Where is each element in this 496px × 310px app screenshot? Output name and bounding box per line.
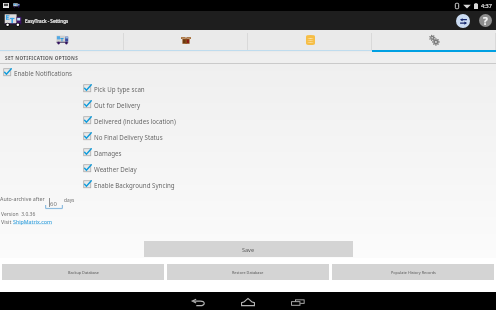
button[interactable]: Pick Up type scan — [83, 84, 145, 93]
button[interactable]: Help — [479, 14, 492, 27]
staticText: EasyTrack - Settings — [25, 18, 69, 24]
staticText: Weather Delay — [94, 165, 137, 173]
button[interactable]: Weather Delay — [83, 164, 137, 173]
button[interactable]: No Final Delivery Status — [83, 132, 163, 141]
staticText: Auto-archive after — [0, 195, 45, 202]
staticText: Backup Database — [68, 270, 99, 275]
button[interactable]: Recent apps — [285, 292, 311, 310]
button[interactable]: Delivered (includes location) — [83, 116, 176, 125]
button[interactable]: ShipMatrix.com — [13, 218, 52, 225]
button[interactable]: Damages — [83, 148, 122, 157]
staticText: SET NOTIFICATION OPTIONS — [5, 55, 79, 61]
button[interactable]: Out for Delivery — [83, 100, 141, 109]
button[interactable]: Save — [144, 241, 353, 257]
button[interactable]: Restore Database — [167, 264, 329, 280]
staticText: 4:37 — [481, 2, 492, 9]
staticText: Enable Background Syncing — [94, 181, 175, 189]
button[interactable]: Backup Database — [2, 264, 164, 280]
button[interactable]: Populate History Records — [332, 264, 494, 280]
staticText: Out for Delivery — [94, 101, 141, 109]
button[interactable]: 60 — [45, 196, 63, 210]
button[interactable]: Shipments — [0, 30, 124, 52]
staticText: Save — [242, 246, 255, 253]
staticText: 60 — [50, 200, 57, 208]
button[interactable]: Enable Background Syncing — [83, 180, 175, 189]
staticText: No Final Delivery Status — [94, 133, 163, 141]
staticText: Restore Database — [232, 270, 264, 275]
staticText: Delivered (includes location) — [94, 117, 176, 125]
staticText: days — [64, 197, 75, 204]
staticText: Damages — [94, 149, 122, 157]
button[interactable]: History — [248, 30, 372, 52]
staticText: Pick Up type scan — [94, 85, 145, 93]
staticText: Enable Notifications — [14, 69, 73, 77]
button[interactable]: Packages — [124, 30, 248, 52]
staticText: Visit — [1, 218, 13, 225]
staticText: Populate History Records — [391, 270, 436, 275]
button[interactable]: Settings — [372, 30, 496, 52]
staticText: Version 3.0.36 — [1, 211, 36, 218]
button[interactable]: Back — [186, 292, 211, 310]
button[interactable]: Sync — [456, 14, 470, 28]
button[interactable]: Enable Notifications — [3, 68, 73, 77]
button[interactable]: Home — [235, 292, 261, 310]
staticText: ? — [483, 14, 488, 27]
